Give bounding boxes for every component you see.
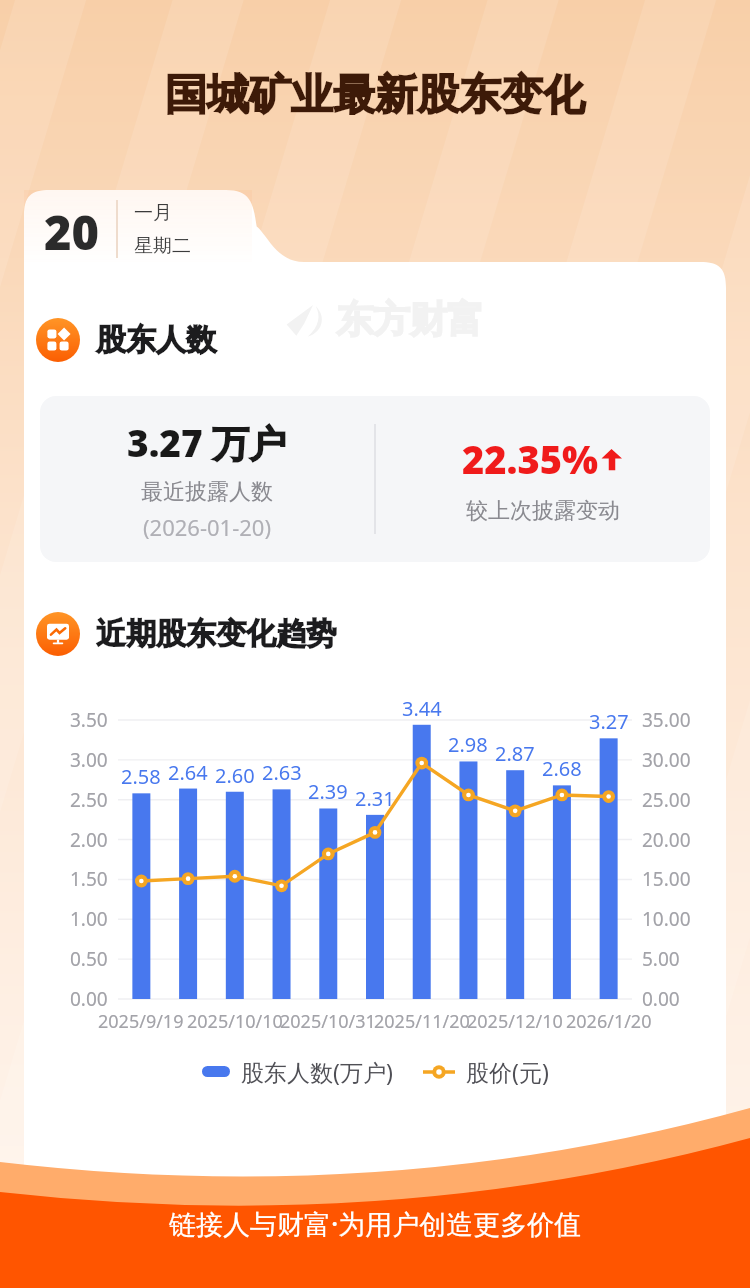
- staticText: 近期股东变化趋势: [96, 615, 336, 653]
- staticText: 2.00: [70, 827, 108, 853]
- staticText: 3.27: [589, 708, 629, 735]
- staticText: 链接人与财富·为用户创造更多价值: [169, 1205, 582, 1242]
- staticText: 2.87: [495, 740, 535, 767]
- staticText: 2.39: [308, 778, 348, 805]
- staticText: 2025/9/19: [98, 1009, 184, 1034]
- other: 近期股东变化趋势: [36, 612, 80, 656]
- button[interactable]: 3.27 万户: [40, 396, 710, 562]
- staticText: (2026-01-20): [143, 512, 272, 542]
- staticText: 3.00: [70, 747, 108, 773]
- staticText: 30.00: [642, 747, 691, 773]
- staticText: 2.98: [448, 731, 488, 758]
- staticText: 2.50: [70, 787, 108, 813]
- staticText: 2.58: [121, 763, 161, 790]
- staticText: 股价(元): [466, 1056, 549, 1087]
- staticText: 2.64: [168, 759, 208, 786]
- staticText: 20.00: [642, 827, 691, 853]
- staticText: 2025/11/20: [374, 1009, 470, 1034]
- staticText: 股东人数(万户): [241, 1056, 393, 1087]
- staticText: 1.00: [70, 906, 108, 932]
- staticText: 2025/10/31: [280, 1009, 376, 1034]
- staticText: 2.63: [262, 759, 302, 786]
- other: 股东人数: [36, 318, 80, 362]
- staticText: 0.00: [70, 986, 108, 1012]
- staticText: 2025/10/10: [187, 1009, 283, 1034]
- staticText: 20: [44, 200, 100, 258]
- staticText: 1.50: [70, 866, 108, 892]
- staticText: 星期二: [134, 234, 191, 258]
- staticText: 一月: [134, 201, 172, 225]
- staticText: 15.00: [642, 866, 691, 892]
- staticText: 2025/12/10: [467, 1009, 563, 1034]
- button[interactable]: 股东人数: [0, 318, 750, 362]
- staticText: 3.44: [402, 695, 442, 722]
- staticText: 3.50: [70, 707, 108, 733]
- staticText: 股东人数: [96, 321, 216, 359]
- staticText: 东方财富: [336, 296, 484, 343]
- staticText: 25.00: [642, 787, 691, 813]
- staticText: 较上次披露变动: [466, 497, 620, 525]
- staticText: 10.00: [642, 906, 691, 932]
- staticText: 0.00: [642, 986, 680, 1012]
- staticText: 22.35%: [462, 433, 599, 485]
- staticText: 2.31: [355, 785, 395, 812]
- staticText: 5.00: [642, 946, 680, 972]
- staticText: 2026/1/20: [566, 1009, 652, 1034]
- staticText: 3.27 万户: [127, 417, 287, 468]
- staticText: 国城矿业最新股东变化: [165, 69, 585, 122]
- staticText: 2.68: [542, 755, 582, 782]
- button[interactable]: 近期股东变化趋势: [0, 612, 750, 656]
- staticText: 0.50: [70, 946, 108, 972]
- staticText: 35.00: [642, 707, 691, 733]
- staticText: 2.60: [215, 762, 255, 789]
- staticText: 最近披露人数: [141, 478, 273, 506]
